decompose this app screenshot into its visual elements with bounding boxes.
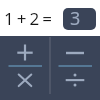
staticText: 1+2=	[4, 7, 55, 30]
button[interactable]: Multiply	[0, 67, 50, 100]
button[interactable]: 3	[63, 8, 96, 30]
button[interactable]: Plus	[0, 36, 50, 65]
staticText: 3	[70, 8, 81, 28]
button[interactable]: Minus	[50, 36, 100, 65]
button[interactable]: Divide	[50, 67, 100, 100]
